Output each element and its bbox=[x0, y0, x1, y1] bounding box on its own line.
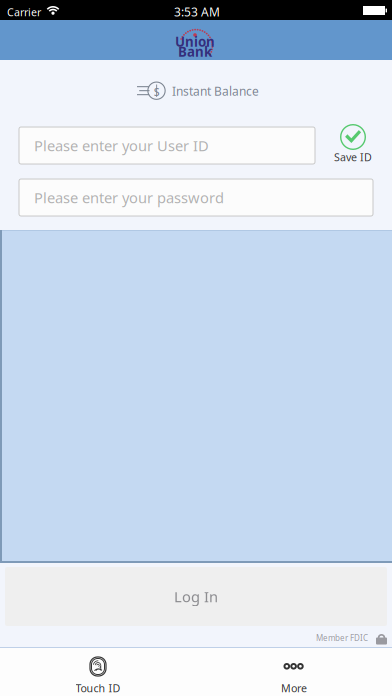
button[interactable]: Please enter your User ID bbox=[19, 127, 315, 164]
staticText: More bbox=[281, 681, 307, 695]
staticText: Member FDIC bbox=[316, 633, 368, 643]
staticText: Union bbox=[175, 33, 215, 50]
staticText: Please enter your password bbox=[34, 188, 224, 207]
button[interactable]: S bbox=[137, 78, 261, 104]
staticText: Instant Balance bbox=[172, 83, 259, 99]
button[interactable]: Please enter your password bbox=[19, 179, 373, 216]
staticText: Touch ID bbox=[75, 681, 120, 695]
staticText: Log In bbox=[174, 587, 218, 606]
staticText: Please enter your User ID bbox=[34, 136, 209, 155]
button[interactable]: Touch ID bbox=[0, 648, 196, 696]
button[interactable]: Log In bbox=[5, 567, 387, 626]
staticText: Bank bbox=[178, 43, 212, 60]
staticText: S bbox=[154, 85, 160, 99]
staticText: Save ID bbox=[334, 150, 372, 164]
button[interactable]: More bbox=[196, 648, 392, 696]
button[interactable]: Save ID bbox=[327, 123, 379, 164]
staticText: Carrier bbox=[7, 5, 41, 19]
staticText: 3:53 AM bbox=[174, 4, 220, 20]
